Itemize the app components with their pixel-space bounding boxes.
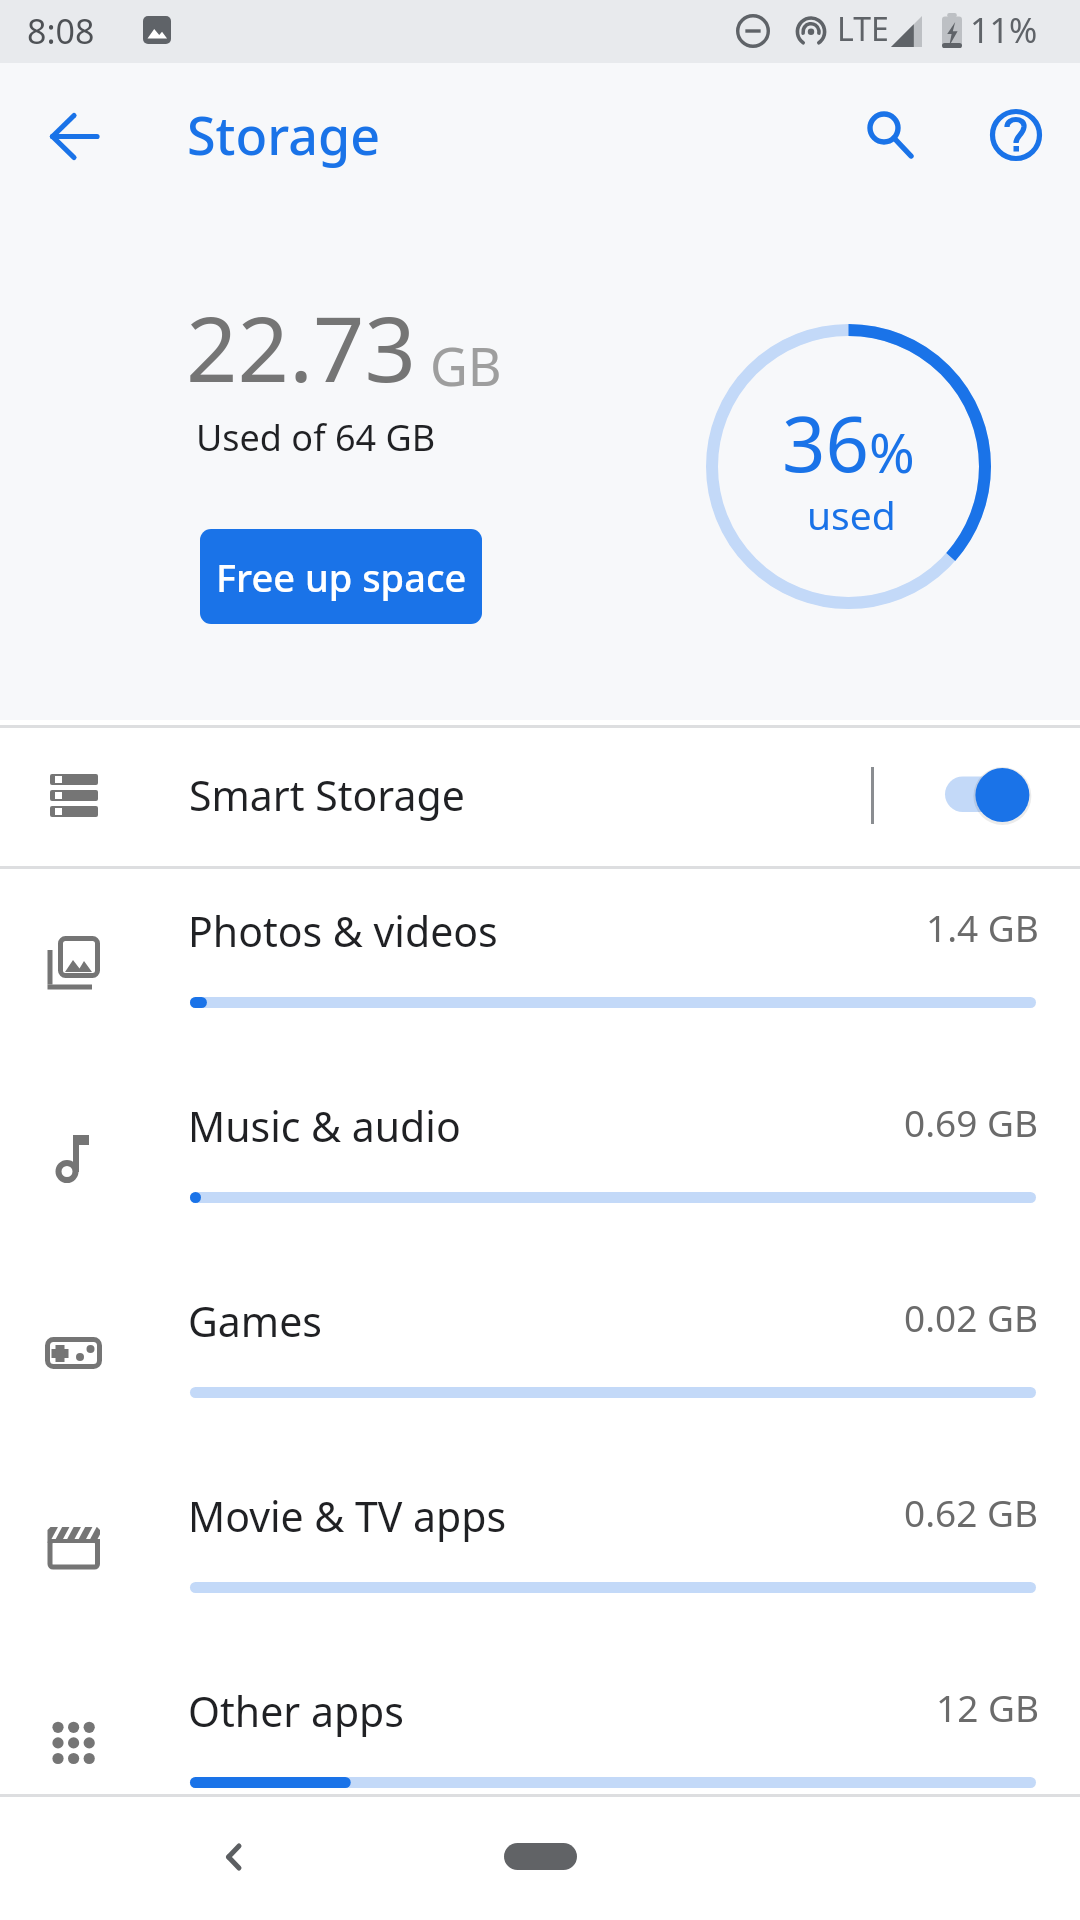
staticText: Photos & videos (188, 903, 498, 959)
staticText: Games (188, 1293, 322, 1349)
staticText: 12 GB (936, 1682, 1039, 1732)
button[interactable]: Other apps (0, 1649, 1080, 1844)
staticText: LTE (837, 7, 889, 51)
button[interactable]: Smart Storage toggle (940, 762, 1036, 822)
staticText: Used of 64 GB (196, 413, 436, 462)
staticText: 36 (782, 391, 869, 495)
staticText: 0.62 GB (904, 1487, 1039, 1537)
button[interactable]: Help (972, 91, 1060, 179)
button[interactable]: Games (0, 1259, 1080, 1454)
staticText: 22.73 (186, 286, 417, 409)
button[interactable]: Photos & videos (0, 869, 1080, 1064)
button[interactable]: Search (840, 91, 928, 179)
staticText: Music & audio (188, 1098, 461, 1154)
button[interactable]: Music & audio (0, 1064, 1080, 1259)
button[interactable]: Back (190, 1813, 278, 1901)
staticText: % (869, 414, 915, 489)
staticText: Smart Storage (189, 767, 465, 823)
staticText: Other apps (188, 1683, 404, 1739)
button[interactable]: Home (504, 1843, 577, 1870)
staticText: GB (430, 330, 502, 401)
button[interactable]: Movie & TV apps (0, 1454, 1080, 1649)
button[interactable]: Back (30, 92, 118, 180)
staticText: Free up space (216, 551, 467, 603)
button[interactable]: Free up space (200, 529, 482, 624)
staticText: 8:08 (27, 8, 95, 54)
staticText: 11% (970, 7, 1038, 53)
button[interactable]: Smart Storage (0, 728, 1080, 866)
staticText: 0.02 GB (904, 1292, 1039, 1342)
staticText: 0.69 GB (904, 1097, 1039, 1147)
staticText: Storage (187, 99, 381, 170)
staticText: Movie & TV apps (188, 1488, 507, 1544)
staticText: 1.4 GB (926, 902, 1039, 952)
staticText: used (807, 488, 896, 541)
